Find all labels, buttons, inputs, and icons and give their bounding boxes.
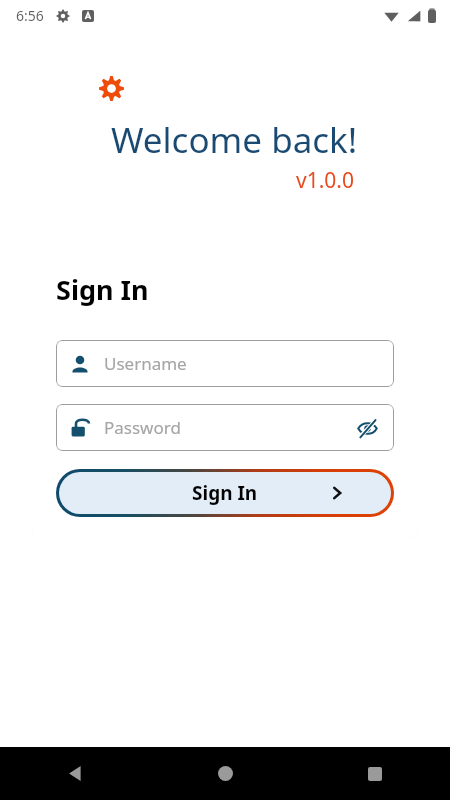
other: App logo [89,66,133,110]
button[interactable]: Password [56,404,394,451]
staticText: Username [104,352,380,375]
staticText: 6:56 [16,6,44,25]
button[interactable]: Sign In [59,472,391,514]
button[interactable]: Back [0,747,150,800]
button[interactable]: Home [150,747,300,800]
button[interactable]: Toggle password visibility [354,415,380,441]
staticText: Sign In [56,271,149,308]
staticText: Welcome back! [111,116,358,164]
button[interactable]: Recent apps [300,747,450,800]
staticText: v1.0.0 [296,166,354,195]
staticText: Sign In [192,480,258,506]
staticText: Password [104,416,354,439]
button[interactable]: Username [56,340,394,387]
